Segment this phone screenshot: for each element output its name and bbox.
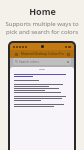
- button[interactable]: Search colors: [13, 58, 71, 65]
- staticText: Material Desktop Colors Pro: [21, 52, 64, 56]
- button[interactable]: [39, 69, 45, 70]
- staticText: Home: [29, 5, 56, 17]
- staticText: Supports multiple ways to pick and searc…: [0, 20, 84, 36]
- button[interactable]: Settings: [65, 51, 71, 57]
- staticText: Search colors: [19, 60, 39, 64]
- button[interactable]: Open navigation menu: [13, 51, 19, 57]
- button[interactable]: Change view: [66, 60, 69, 63]
